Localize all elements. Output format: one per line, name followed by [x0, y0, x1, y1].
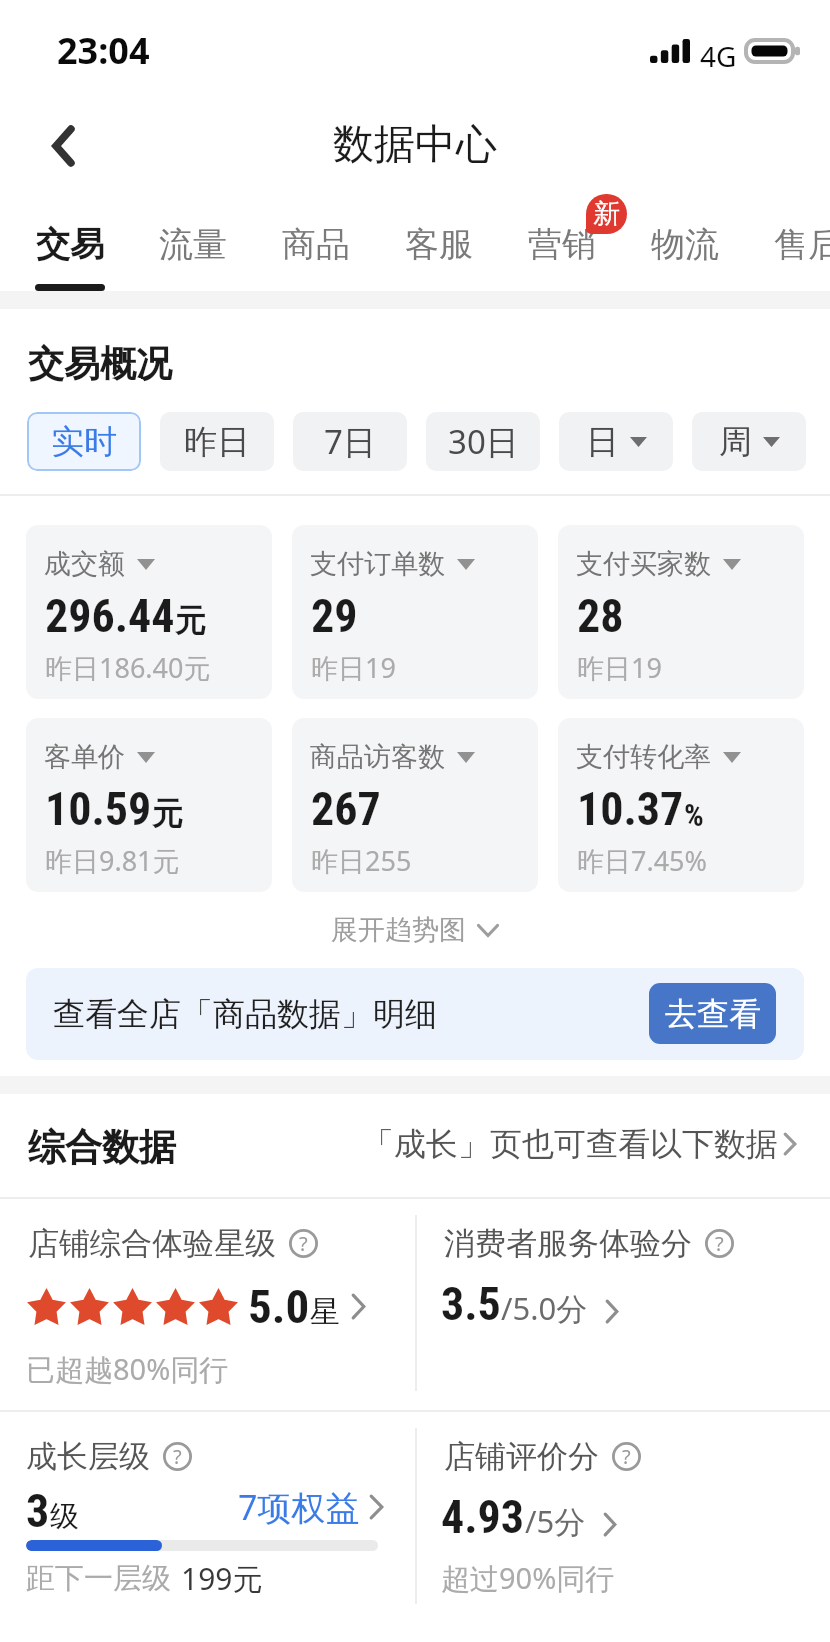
staticText: 29: [311, 589, 358, 643]
staticText: 30日: [448, 419, 519, 464]
staticText: 交易: [36, 223, 104, 266]
staticText: 28: [577, 589, 624, 643]
staticText: 昨日7.45%: [577, 842, 708, 879]
staticText: 10.59: [45, 782, 152, 836]
staticText: ?: [299, 1230, 308, 1257]
staticText: 超过90%同行: [441, 1558, 615, 1598]
staticText: 售后: [774, 223, 830, 266]
staticText: 已超越80%同行: [26, 1349, 229, 1389]
staticText: /5.0分: [501, 1287, 588, 1329]
staticText: 物流: [651, 223, 719, 266]
staticText: 店铺综合体验星级: [28, 1224, 276, 1263]
staticText: 新: [593, 197, 620, 231]
button[interactable]: 昨日: [160, 412, 274, 471]
staticText: ?: [173, 1443, 182, 1470]
button[interactable]: 「成长」页也可查看以下数据: [362, 1124, 798, 1164]
button[interactable]: 营销: [501, 196, 623, 291]
staticText: 商品: [282, 223, 350, 266]
staticText: 元: [175, 601, 206, 640]
staticText: 交易概况: [28, 341, 172, 386]
staticText: ?: [715, 1230, 724, 1257]
staticText: 支付转化率: [576, 740, 711, 774]
staticText: 3.5: [441, 1277, 501, 1331]
staticText: 周: [719, 421, 752, 463]
staticText: 消费者服务体验分: [444, 1224, 692, 1263]
staticText: 客单价: [44, 740, 125, 774]
button[interactable]: 商品访客数: [292, 718, 538, 892]
staticText: 成交额: [44, 547, 125, 581]
button[interactable]: 支付转化率: [558, 718, 804, 892]
staticText: 客服: [405, 223, 473, 266]
button[interactable]: Back: [12, 90, 114, 202]
staticText: 4G: [700, 37, 737, 75]
button[interactable]: 实时: [27, 412, 141, 471]
button[interactable]: 30日: [426, 412, 540, 471]
staticText: 支付买家数: [576, 547, 711, 581]
button[interactable]: 支付买家数: [558, 525, 804, 699]
button[interactable]: 商品: [255, 196, 377, 291]
button[interactable]: 7日: [293, 412, 407, 471]
button[interactable]: 展开趋势图: [331, 907, 499, 953]
button[interactable]: 客服: [378, 196, 500, 291]
staticText: ?: [622, 1443, 631, 1470]
staticText: 级: [50, 1498, 79, 1535]
staticText: 昨日19: [311, 649, 396, 686]
button[interactable]: 店铺评价分: [417, 1412, 830, 1623]
button[interactable]: 去查看: [649, 983, 776, 1044]
button[interactable]: 交易: [9, 196, 131, 291]
staticText: 昨日186.40元: [45, 649, 211, 686]
button[interactable]: 售后: [747, 196, 830, 291]
staticText: 距下一层级: [26, 1560, 171, 1597]
button[interactable]: 客单价: [26, 718, 272, 892]
staticText: 综合数据: [28, 1124, 176, 1171]
button[interactable]: 日: [559, 412, 673, 471]
staticText: 199元: [181, 1558, 263, 1599]
staticText: 7项权益: [238, 1484, 360, 1530]
button[interactable]: 物流: [624, 196, 746, 291]
staticText: 店铺评价分: [444, 1437, 599, 1476]
staticText: 实时: [51, 421, 117, 463]
button[interactable]: 支付订单数: [292, 525, 538, 699]
button[interactable]: 消费者服务体验分: [417, 1199, 830, 1410]
staticText: 去查看: [665, 994, 761, 1034]
staticText: 营销: [528, 223, 596, 266]
staticText: 展开趋势图: [331, 913, 466, 947]
staticText: 数据中心: [333, 119, 497, 171]
button[interactable]: 7项权益: [238, 1484, 385, 1530]
staticText: 5.0: [248, 1279, 310, 1334]
staticText: 10.37: [577, 782, 684, 836]
staticText: 23:04: [57, 26, 150, 75]
button[interactable]: 成长层级: [0, 1412, 415, 1623]
button[interactable]: 店铺综合体验星级: [0, 1199, 415, 1410]
staticText: 296.44: [45, 589, 175, 643]
staticText: 商品访客数: [310, 740, 445, 774]
staticText: %: [684, 797, 704, 833]
staticText: 267: [311, 782, 381, 836]
staticText: 昨日19: [577, 649, 662, 686]
button[interactable]: 周: [692, 412, 806, 471]
staticText: /5分: [525, 1500, 586, 1542]
staticText: 元: [152, 794, 183, 833]
staticText: 3: [26, 1484, 50, 1538]
staticText: 4.93: [441, 1490, 525, 1544]
staticText: 星: [310, 1293, 340, 1331]
button[interactable]: 流量: [132, 196, 254, 291]
staticText: 查看全店「商品数据」明细: [53, 994, 437, 1034]
staticText: 7日: [324, 419, 376, 464]
button[interactable]: 查看全店「商品数据」明细: [26, 968, 804, 1060]
staticText: 昨日255: [311, 842, 412, 879]
button[interactable]: 成交额: [26, 525, 272, 699]
staticText: 流量: [159, 223, 227, 266]
staticText: 支付订单数: [310, 547, 445, 581]
staticText: 昨日: [184, 421, 250, 463]
staticText: 昨日9.81元: [45, 842, 180, 879]
staticText: 日: [586, 421, 619, 463]
staticText: 「成长」页也可查看以下数据: [362, 1124, 778, 1164]
staticText: 成长层级: [26, 1437, 150, 1476]
